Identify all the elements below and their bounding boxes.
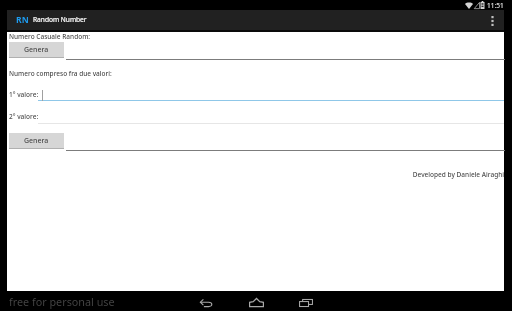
button[interactable]: Genera — [9, 42, 64, 58]
staticText: Numero Casuale Random: — [9, 32, 91, 41]
staticText: Developed by Daniele Airaghi — [7, 170, 504, 179]
staticText: 11:51 — [487, 1, 504, 10]
staticText: RN — [16, 14, 29, 26]
staticText: free for personal use — [9, 294, 115, 309]
button[interactable]: Back — [194, 291, 220, 311]
staticText: 1° valore: — [9, 90, 39, 99]
staticText: Genera — [24, 136, 49, 146]
button[interactable]: Genera — [9, 133, 64, 149]
staticText: 2° valore: — [9, 112, 39, 121]
button[interactable]: Recent apps — [293, 291, 319, 311]
button[interactable]: Home — [243, 291, 269, 311]
staticText: Random Number — [33, 15, 87, 24]
staticText: Genera — [24, 45, 49, 55]
staticText: Numero compreso fra due valori: — [9, 69, 112, 78]
button[interactable]: More options — [484, 10, 504, 30]
